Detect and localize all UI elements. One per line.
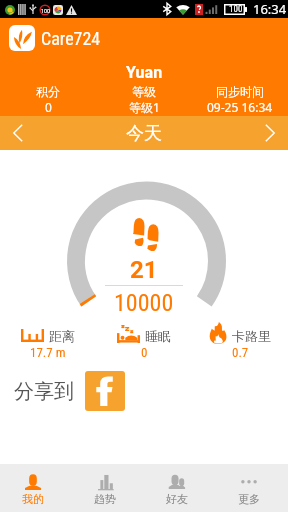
button[interactable]: 我的 <box>0 464 69 512</box>
button[interactable]: 等级 <box>96 84 192 115</box>
staticText: 0 <box>45 99 52 115</box>
staticText: 等级 <box>132 84 156 99</box>
button[interactable]: 今天 <box>100 116 188 150</box>
staticText: 睡眠 <box>145 328 171 344</box>
button[interactable]: Care724 logo <box>9 25 35 51</box>
staticText: Yuan <box>126 63 163 82</box>
button[interactable]: 积分 <box>0 84 96 115</box>
staticText: 我的 <box>22 492 44 506</box>
staticText: 更多 <box>238 492 260 506</box>
button[interactable]: 距离 <box>0 317 96 360</box>
staticText: 分享到 <box>14 379 74 404</box>
staticText: 17.7 m <box>30 345 66 360</box>
staticText: 距离 <box>49 328 75 344</box>
button[interactable]: 卡路里 <box>192 317 288 360</box>
button[interactable]: Previous day <box>0 116 36 150</box>
staticText: 10000 <box>114 289 174 317</box>
staticText: 09-25 16:34 <box>207 99 273 115</box>
button[interactable]: 睡眠 <box>96 317 192 360</box>
staticText: 积分 <box>36 84 60 99</box>
staticText: 0 <box>141 345 148 360</box>
button[interactable]: 更多 <box>213 464 285 512</box>
staticText: 21 <box>130 256 158 284</box>
staticText: 100 <box>229 4 243 15</box>
staticText: 16:34 <box>253 0 287 18</box>
staticText: Care724 <box>41 28 101 49</box>
button[interactable]: Share to Facebook <box>85 371 125 411</box>
button[interactable]: Next day <box>252 116 288 150</box>
button[interactable]: 好友 <box>141 464 213 512</box>
staticText: 同步时间 <box>216 84 264 99</box>
button[interactable]: 同步时间 <box>192 84 288 115</box>
staticText: 卡路里 <box>232 328 271 344</box>
staticText: 今天 <box>126 122 162 144</box>
staticText: 趋势 <box>94 492 116 506</box>
staticText: 0.7 <box>232 345 249 360</box>
staticText: 好友 <box>166 492 188 506</box>
button[interactable]: 趋势 <box>69 464 141 512</box>
staticText: 等级1 <box>129 99 160 115</box>
staticText: 100 <box>41 7 50 14</box>
